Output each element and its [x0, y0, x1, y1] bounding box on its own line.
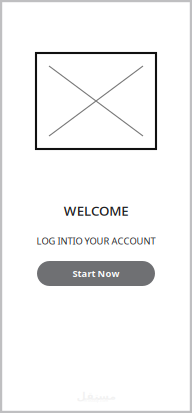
button[interactable]: Start Now	[37, 261, 155, 286]
staticText: mostaql.com	[83, 398, 108, 403]
staticText: مستقل	[76, 390, 116, 402]
staticText: Start Now	[72, 267, 119, 280]
staticText: LOG INTIO YOUR ACCOUNT	[36, 235, 155, 247]
staticText: WELCOME	[64, 202, 128, 219]
